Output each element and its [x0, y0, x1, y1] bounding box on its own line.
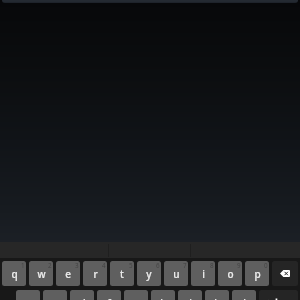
button[interactable]: s [43, 290, 67, 300]
button[interactable]: 3 [56, 261, 80, 286]
staticText: 0 [264, 261, 268, 270]
button[interactable]: h [151, 290, 175, 300]
button[interactable]: j [178, 290, 202, 300]
button[interactable]: a [16, 290, 40, 300]
staticText: 1 [21, 261, 25, 270]
staticText: 9 [237, 261, 241, 270]
staticText: o [227, 267, 234, 281]
staticText: 3 [75, 261, 79, 270]
button[interactable]: 9 [218, 261, 242, 286]
staticText: u [173, 267, 180, 281]
staticText: l [243, 296, 246, 300]
staticText: h [160, 296, 167, 300]
staticText: i [202, 267, 205, 281]
staticText: k [214, 296, 220, 300]
button[interactable]: 0 [245, 261, 269, 286]
button[interactable]: f [97, 290, 121, 300]
button[interactable]: l [232, 290, 256, 300]
staticText: q [11, 267, 18, 281]
staticText: f [107, 296, 111, 300]
button[interactable]: Backspace [272, 261, 298, 286]
button[interactable]: 8 [191, 261, 215, 286]
staticText: j [189, 296, 192, 300]
button[interactable]: 5 [110, 261, 134, 286]
staticText: t [120, 267, 124, 281]
staticText: e [65, 267, 71, 281]
button[interactable]: Enter [259, 290, 298, 300]
button[interactable]: 6 [137, 261, 161, 286]
staticText: d [79, 296, 86, 300]
staticText: 7 [183, 261, 187, 270]
button[interactable]: k [205, 290, 229, 300]
staticText: y [146, 267, 152, 281]
button[interactable]: 2 [29, 261, 53, 286]
staticText: 6 [156, 261, 160, 270]
button[interactable]: 1 [2, 261, 26, 286]
button[interactable]: g [124, 290, 148, 300]
button[interactable]: 4 [83, 261, 107, 286]
staticText: 5 [129, 261, 133, 270]
staticText: 2 [48, 261, 52, 270]
button[interactable]: 7 [164, 261, 188, 286]
staticText: 4 [102, 261, 106, 270]
staticText: w [37, 267, 46, 281]
staticText: 8 [210, 261, 214, 270]
button[interactable]: d [70, 290, 94, 300]
staticText: p [254, 267, 261, 281]
staticText: r [93, 267, 98, 281]
